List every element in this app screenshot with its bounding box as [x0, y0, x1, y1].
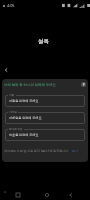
button[interactable] [5, 95, 85, 107]
button[interactable]: Back [0, 64, 12, 76]
button[interactable] [5, 112, 85, 124]
staticText: 이메일 [9, 110, 17, 113]
button[interactable]: Home [39, 187, 54, 200]
button[interactable]: Recents [10, 187, 25, 200]
staticText: ? [83, 83, 85, 87]
staticText: 설옥 [38, 38, 50, 45]
staticText: 이름을 입력해 주세요 [9, 99, 39, 103]
button[interactable]: Hide keyboard [1, 188, 9, 196]
staticText: 아래 항목 중 하나만 입력해 주세요 [4, 82, 56, 87]
button[interactable] [5, 129, 85, 141]
staticText: 휴대폰 번호 [9, 127, 23, 131]
staticText: 번호를 입력해 주세요 [9, 133, 39, 137]
button[interactable]: Help [81, 82, 86, 87]
button[interactable]: Back [63, 187, 78, 200]
staticText: 보기 [72, 149, 78, 153]
staticText: 4:05 [7, 3, 15, 8]
staticText: 개인정보 수집 및 이용 동의 (필수) 에 동의합니다 [4, 149, 69, 153]
staticText: 이메일을 입력해 주세요 [9, 116, 42, 120]
staticText: 이름 [9, 93, 15, 96]
